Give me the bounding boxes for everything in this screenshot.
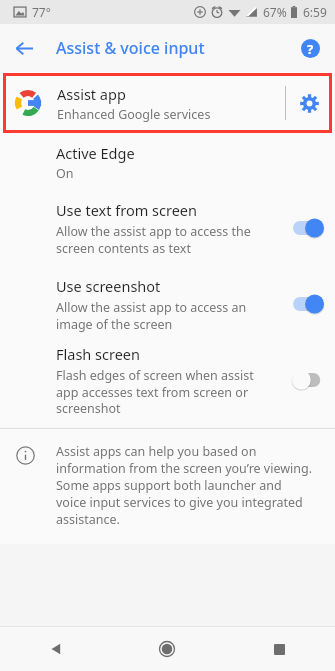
button[interactable]: Recent apps [223,627,335,671]
staticText: Flash screen [56,344,140,364]
button[interactable]: Flash screen [0,342,335,418]
button[interactable]: Flash screen off [281,356,335,404]
staticText: Use text from screen [56,200,197,220]
staticText: On [56,165,74,182]
staticText: Assist apps can help you based on inform… [56,443,313,528]
button[interactable]: Use text from screen [0,190,335,266]
button[interactable]: Use screenshot [0,266,335,342]
button[interactable]: Use screenshot on [281,280,335,328]
button[interactable]: Assist app settings [286,73,332,133]
staticText: 6:59 [303,4,327,20]
staticText: Allow the assist app to access the scree… [56,223,269,256]
button[interactable]: Active Edge [0,134,335,190]
staticText: Assist & voice input [56,37,205,59]
staticText: 77° [32,4,51,20]
staticText: Flash edges of screen when assist app ac… [56,367,269,416]
staticText: 67% [263,4,287,20]
button[interactable]: Back [0,627,111,671]
button[interactable]: Home [111,627,223,671]
staticText: Enhanced Google services [57,106,211,123]
staticText: Use screenshot [56,276,161,296]
staticText: Allow the assist app to access an image … [56,299,269,332]
button[interactable]: Assist app [3,73,332,133]
button[interactable]: Help [293,31,327,65]
staticText: ? [307,40,314,58]
staticText: Active Edge [56,143,135,163]
button[interactable]: Use text from screen on [281,204,335,252]
staticText: Assist app [57,84,126,104]
button[interactable]: Back [6,30,42,66]
